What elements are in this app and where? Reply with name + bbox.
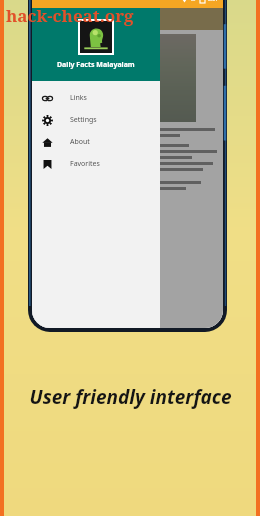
staticText: Favorites xyxy=(70,159,100,169)
staticText: hack-cheat.org xyxy=(6,4,134,27)
staticText: Links xyxy=(70,93,87,103)
staticText: Daily Facts Malayalam xyxy=(57,60,135,70)
button[interactable]: Settings xyxy=(32,109,160,131)
staticText: About xyxy=(70,137,90,147)
staticText: 8:51 xyxy=(208,0,218,3)
button[interactable]: About xyxy=(32,131,160,153)
staticText: Settings xyxy=(70,115,97,125)
button[interactable]: Favorites xyxy=(32,153,160,175)
staticText: User friendly interface xyxy=(29,384,232,410)
button[interactable]: Links xyxy=(32,87,160,109)
